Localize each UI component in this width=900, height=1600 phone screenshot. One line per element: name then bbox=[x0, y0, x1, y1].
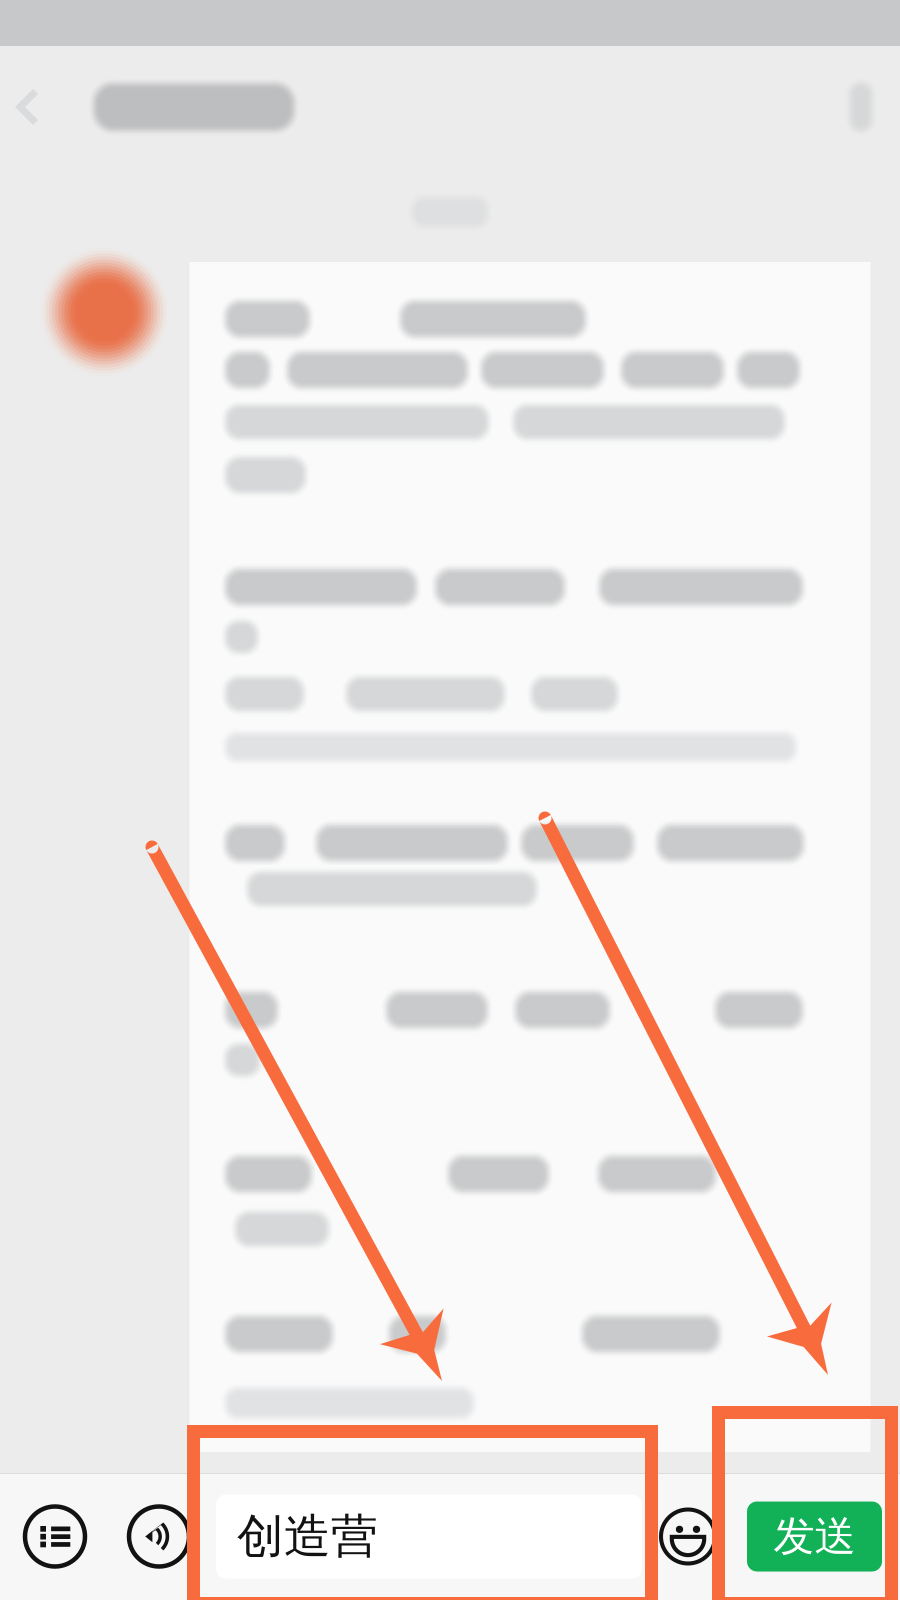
button[interactable]: Voice input bbox=[110, 1473, 208, 1600]
button[interactable]: 发送 bbox=[734, 1501, 882, 1571]
staticText: 发送 bbox=[773, 1511, 855, 1562]
button[interactable]: Back bbox=[0, 67, 52, 147]
button[interactable]: More bbox=[0, 1473, 110, 1600]
button[interactable]: 创造营 bbox=[208, 1494, 642, 1578]
staticText: 创造营 bbox=[237, 1508, 378, 1565]
button[interactable]: More options bbox=[822, 67, 900, 147]
button[interactable]: Emoji bbox=[642, 1473, 734, 1600]
